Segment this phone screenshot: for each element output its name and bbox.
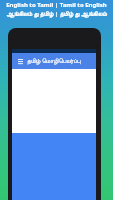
button[interactable]: Menu [15, 56, 25, 66]
staticText: ஆங்கிலம் து தமிழ் | தமிழ் து ஆங்கிலம் [6, 10, 107, 18]
staticText: English to Tamil | Tamil to English [6, 1, 107, 9]
staticText: தமிழ் மொழிபெயர்ப்பு [27, 57, 81, 65]
